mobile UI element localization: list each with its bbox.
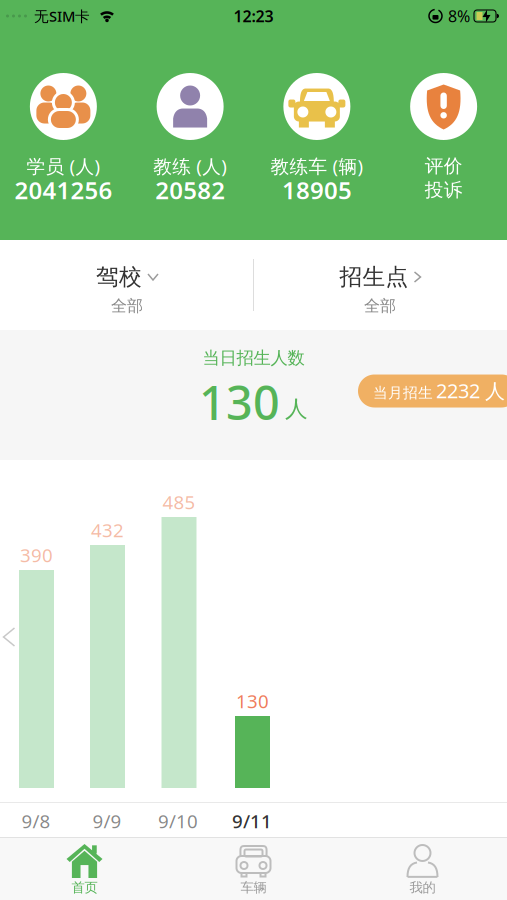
staticText: 驾校: [96, 263, 142, 291]
button[interactable]: 首页: [0, 838, 169, 900]
staticText: 车辆: [240, 879, 266, 896]
staticText: 12:23: [233, 5, 273, 27]
staticText: 18905: [282, 174, 352, 206]
staticText: 8%: [448, 5, 470, 27]
staticText: 2232 人: [436, 377, 505, 404]
staticText: 当月招生: [373, 384, 433, 402]
staticText: 学员 (人): [26, 154, 100, 178]
button[interactable]: 我的: [338, 838, 507, 900]
staticText: 2041256: [14, 174, 112, 206]
staticText: 20582: [155, 174, 225, 206]
button[interactable]: 车辆: [169, 838, 338, 900]
staticText: 招生点: [339, 263, 408, 291]
staticText: 我的: [409, 879, 435, 896]
staticText: 全部: [111, 296, 143, 316]
staticText: 9/11: [232, 809, 272, 833]
staticText: 全部: [364, 296, 396, 316]
button[interactable]: 当月招生: [358, 374, 507, 407]
button[interactable]: 驾校: [0, 240, 253, 330]
staticText: 无SIM卡: [34, 6, 90, 26]
staticText: 投诉: [425, 178, 463, 201]
staticText: 人: [285, 395, 308, 423]
staticText: 432: [91, 518, 124, 542]
staticText: 390: [20, 543, 53, 567]
staticText: 9/9: [92, 809, 121, 833]
staticText: 评价: [425, 154, 463, 177]
staticText: 485: [162, 490, 195, 514]
button[interactable]: 招生点: [253, 240, 506, 330]
staticText: 9/10: [158, 809, 198, 833]
staticText: 教练车 (辆): [270, 154, 363, 178]
staticText: 130: [199, 371, 280, 433]
staticText: 当日招生人数: [202, 347, 304, 369]
staticText: 教练 (人): [153, 154, 227, 178]
staticText: 130: [236, 689, 269, 713]
staticText: 9/8: [21, 809, 50, 833]
staticText: 首页: [71, 879, 97, 896]
